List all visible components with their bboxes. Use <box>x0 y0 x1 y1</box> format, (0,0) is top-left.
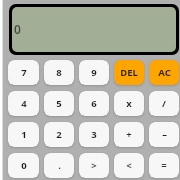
button[interactable]: < <box>114 153 144 178</box>
button[interactable]: 0 <box>8 153 39 178</box>
staticText: 5 <box>56 97 62 110</box>
staticText: < <box>126 159 132 172</box>
button[interactable]: 1 <box>8 122 39 147</box>
button[interactable]: + <box>114 122 144 147</box>
staticText: – <box>162 128 167 141</box>
button[interactable]: 2 <box>44 122 74 147</box>
staticText: x <box>126 97 132 110</box>
button[interactable]: 3 <box>79 122 109 147</box>
button[interactable]: > <box>79 153 109 178</box>
button[interactable]: 6 <box>79 91 109 116</box>
button[interactable]: 7 <box>8 60 39 85</box>
staticText: 6 <box>91 97 97 110</box>
button[interactable]: 8 <box>44 60 74 85</box>
staticText: AC <box>158 66 171 79</box>
staticText: 0 <box>21 159 27 172</box>
button[interactable]: AC <box>149 60 179 85</box>
staticText: = <box>161 159 167 172</box>
button[interactable]: = <box>149 153 179 178</box>
button[interactable]: / <box>149 91 179 116</box>
staticText: 4 <box>21 97 27 110</box>
staticText: 1 <box>21 128 27 141</box>
staticText: > <box>91 159 97 172</box>
button[interactable]: DEL <box>114 60 144 85</box>
staticText: / <box>162 97 166 110</box>
button[interactable]: – <box>149 122 179 147</box>
staticText: . <box>58 159 61 172</box>
button[interactable]: 4 <box>8 91 39 116</box>
staticText: 3 <box>91 128 97 141</box>
button[interactable]: . <box>44 153 74 178</box>
staticText: + <box>126 128 132 141</box>
button[interactable]: 5 <box>44 91 74 116</box>
button[interactable]: x <box>114 91 144 116</box>
staticText: 9 <box>91 66 97 79</box>
button[interactable]: 9 <box>79 60 109 85</box>
staticText: 0 <box>14 21 21 37</box>
staticText: DEL <box>120 66 138 79</box>
staticText: 2 <box>56 128 62 141</box>
staticText: 7 <box>21 66 27 79</box>
staticText: 8 <box>56 66 62 79</box>
